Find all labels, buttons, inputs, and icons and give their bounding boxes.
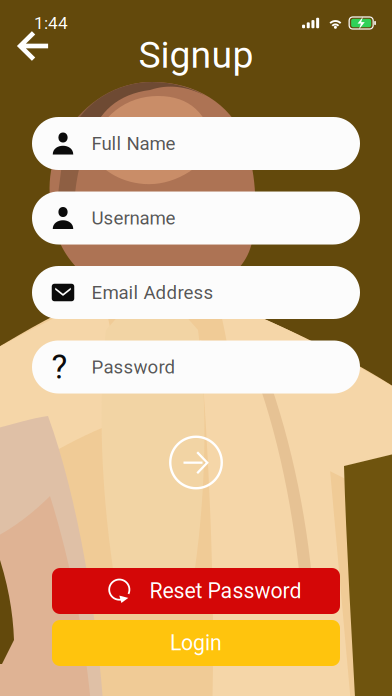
staticText: Password	[91, 356, 175, 378]
button[interactable]: Full Name	[32, 117, 360, 170]
staticText: 1:44	[34, 13, 68, 33]
staticText: Login	[170, 630, 222, 655]
staticText: Signup	[138, 33, 253, 77]
staticText: Email Address	[91, 282, 213, 303]
button[interactable]: Back	[8, 24, 56, 68]
button[interactable]: Login	[52, 620, 340, 666]
button[interactable]: Continue	[165, 431, 227, 493]
staticText: Reset Password	[149, 578, 301, 603]
button[interactable]: Username	[32, 191, 360, 244]
button[interactable]: Reset Password	[52, 568, 340, 614]
staticText: Username	[91, 207, 175, 229]
staticText: ?	[51, 347, 67, 387]
staticText: Full Name	[91, 133, 175, 154]
button[interactable]: Email Address	[32, 266, 360, 319]
button[interactable]: ?	[32, 340, 360, 393]
